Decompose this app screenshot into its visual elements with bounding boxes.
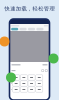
- staticText: 快速加载，轻松管理: [5, 5, 54, 12]
